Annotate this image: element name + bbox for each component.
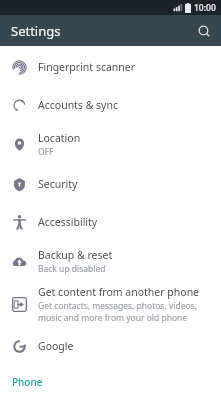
staticText: Location bbox=[38, 131, 81, 145]
button[interactable]: Fingerprint scanner bbox=[0, 48, 221, 86]
staticText: 10:00 bbox=[194, 2, 216, 14]
staticText: Backup & reset bbox=[38, 248, 113, 262]
staticText: Settings bbox=[11, 22, 61, 40]
staticText: Security bbox=[38, 177, 78, 191]
staticText: Phone bbox=[12, 375, 43, 389]
staticText: Google bbox=[38, 339, 74, 353]
button[interactable]: Security bbox=[0, 165, 221, 203]
staticText: OFF bbox=[38, 146, 54, 158]
staticText: Accounts & sync bbox=[38, 98, 118, 112]
button[interactable]: Accounts & sync bbox=[0, 86, 221, 124]
staticText: Accessibility bbox=[38, 215, 98, 229]
staticText: Get content from another phone bbox=[38, 285, 200, 299]
staticText: Fingerprint scanner bbox=[38, 60, 136, 74]
button[interactable]: Google bbox=[0, 327, 221, 365]
button[interactable]: Backup & reset bbox=[0, 241, 221, 282]
button[interactable]: Search bbox=[192, 19, 216, 43]
button[interactable]: Get content from another phone bbox=[0, 282, 221, 327]
button[interactable]: Location bbox=[0, 124, 221, 165]
staticText: Get contacts, messages, photos, videos, bbox=[38, 300, 197, 312]
staticText: music and more from your old phone bbox=[38, 312, 188, 324]
button[interactable]: Accessibility bbox=[0, 203, 221, 241]
staticText: Back up disabled bbox=[38, 263, 106, 275]
